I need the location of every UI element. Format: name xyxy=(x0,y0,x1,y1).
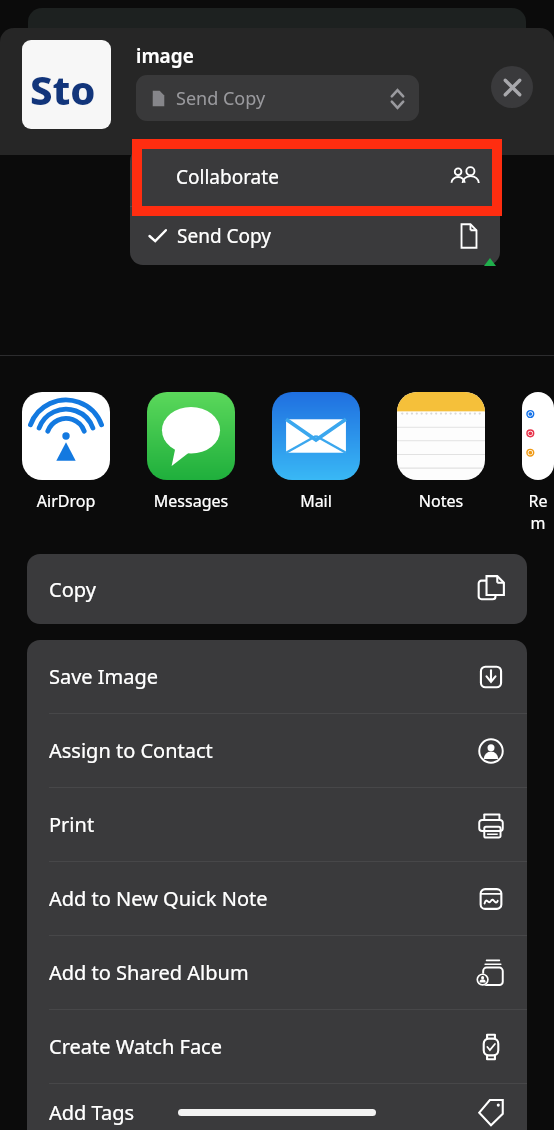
staticText: Mail xyxy=(272,490,360,512)
button[interactable]: Send Copy xyxy=(130,207,500,265)
button[interactable]: Save Image xyxy=(27,640,527,713)
button[interactable]: Collaborate xyxy=(130,148,500,206)
staticText: Assign to Contact xyxy=(49,737,213,764)
staticText: Rem xyxy=(522,490,554,534)
staticText: Notes xyxy=(397,490,485,512)
staticText: Add to Shared Album xyxy=(49,959,249,986)
button[interactable] xyxy=(272,392,360,480)
button[interactable]: Add to Shared Album xyxy=(27,936,527,1009)
button[interactable] xyxy=(147,392,235,480)
staticText: Add Tags xyxy=(49,1099,135,1126)
button[interactable]: Add to New Quick Note xyxy=(27,862,527,935)
button[interactable]: Copy xyxy=(27,554,527,624)
staticText: Add to New Quick Note xyxy=(49,885,268,912)
staticText: Send Copy xyxy=(177,223,272,249)
button[interactable]: Create Watch Face xyxy=(27,1010,527,1083)
staticText: Messages xyxy=(147,490,235,512)
staticText: Collaborate xyxy=(176,164,279,190)
staticText: Print xyxy=(49,811,95,838)
button[interactable] xyxy=(22,392,110,480)
staticText: image xyxy=(136,43,194,69)
button[interactable]: Send Copy xyxy=(136,75,419,121)
button[interactable]: Add Tags xyxy=(27,1084,527,1130)
button[interactable]: Assign to Contact xyxy=(27,714,527,787)
button[interactable]: Print xyxy=(27,788,527,861)
staticText: Send Copy xyxy=(176,86,266,111)
staticText: Copy xyxy=(49,576,96,603)
staticText: Create Watch Face xyxy=(49,1033,222,1060)
staticText: AirDrop xyxy=(22,490,110,512)
staticText: Save Image xyxy=(49,663,159,690)
button[interactable] xyxy=(522,392,554,480)
staticText: Sto xyxy=(30,62,96,116)
button[interactable]: Close xyxy=(491,66,533,108)
button[interactable] xyxy=(397,392,485,480)
